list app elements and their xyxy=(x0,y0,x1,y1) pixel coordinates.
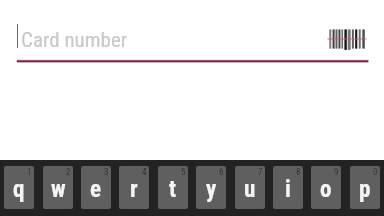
staticText: Card number xyxy=(21,28,128,53)
staticText: 5 xyxy=(181,167,186,178)
button[interactable]: 1 xyxy=(4,166,34,209)
staticText: 3 xyxy=(104,167,109,178)
staticText: p xyxy=(359,176,371,203)
staticText: w xyxy=(51,176,66,203)
staticText: 8 xyxy=(296,167,301,178)
button[interactable]: 8 xyxy=(273,166,303,209)
staticText: t xyxy=(169,176,177,203)
button[interactable]: Scan barcode xyxy=(323,20,371,58)
staticText: e xyxy=(90,176,102,203)
staticText: q xyxy=(13,176,25,203)
staticText: i xyxy=(285,176,291,203)
staticText: 4 xyxy=(142,167,147,178)
staticText: 1 xyxy=(27,167,32,178)
button[interactable]: 9 xyxy=(311,166,341,209)
staticText: o xyxy=(320,176,332,203)
staticText: 7 xyxy=(258,167,263,178)
button[interactable]: 2 xyxy=(43,166,73,209)
staticText: u xyxy=(244,176,256,203)
button[interactable]: 3 xyxy=(81,166,111,209)
staticText: 9 xyxy=(334,167,339,178)
staticText: 2 xyxy=(66,167,71,178)
button[interactable]: 0 xyxy=(350,166,380,209)
staticText: 0 xyxy=(373,167,378,178)
button[interactable]: 7 xyxy=(235,166,265,209)
staticText: r xyxy=(130,176,138,203)
button[interactable]: 4 xyxy=(119,166,149,209)
staticText: 6 xyxy=(219,167,224,178)
staticText: y xyxy=(206,176,217,203)
button[interactable]: 5 xyxy=(158,166,188,209)
button[interactable]: 6 xyxy=(196,166,226,209)
